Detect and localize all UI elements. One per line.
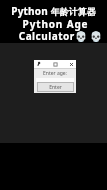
button[interactable]: Close xyxy=(68,61,75,68)
button[interactable]: Maximize xyxy=(52,61,59,68)
staticText: Enter xyxy=(49,84,62,91)
button[interactable]: Enter xyxy=(37,82,74,92)
staticText: Python Age xyxy=(2,17,107,31)
staticText: Calculator💀 💀 xyxy=(7,29,107,43)
button[interactable]: Maximize xyxy=(34,60,76,93)
staticText: Python 年龄计算器 xyxy=(0,4,107,18)
staticText: Enter age: xyxy=(43,70,67,77)
